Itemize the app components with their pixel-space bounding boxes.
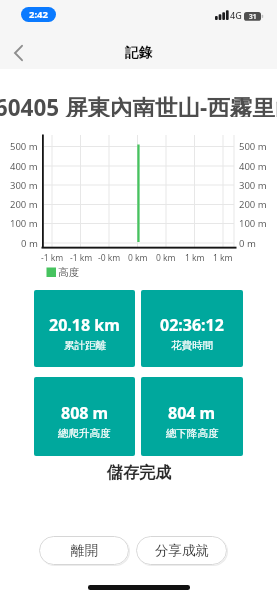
button[interactable]: 808 m xyxy=(34,377,135,456)
staticText: 1 km xyxy=(213,252,233,263)
staticText: 累計距離 xyxy=(64,339,106,352)
button[interactable]: 20.18 km xyxy=(34,290,135,367)
staticText: 高度 xyxy=(58,266,79,279)
staticText: 400 m xyxy=(239,160,267,173)
staticText: 02:36:12 xyxy=(160,314,224,336)
staticText: -1 km xyxy=(41,252,64,263)
button[interactable]: 離開 xyxy=(39,536,129,565)
staticText: 804 m xyxy=(168,402,216,424)
staticText: 分享成就 xyxy=(155,542,209,559)
staticText: 808 m xyxy=(61,402,109,424)
staticText: -1 km xyxy=(70,252,93,263)
button[interactable]: 804 m xyxy=(141,377,243,456)
staticText: 4G xyxy=(230,9,242,21)
staticText: 儲存完成 xyxy=(107,463,171,483)
staticText: 31 xyxy=(249,12,257,21)
staticText: 100 m xyxy=(10,217,38,230)
staticText: 500 m xyxy=(10,140,38,153)
staticText: 花費時間 xyxy=(171,339,213,352)
staticText: 400 m xyxy=(10,160,38,173)
staticText: 總爬升高度 xyxy=(58,427,111,440)
button[interactable]: 分享成就 xyxy=(136,536,227,565)
staticText: 記錄 xyxy=(125,44,152,61)
staticText: 300 m xyxy=(239,179,267,192)
staticText: 200 m xyxy=(239,198,267,211)
staticText: 總下降高度 xyxy=(166,427,219,440)
staticText: 0 km xyxy=(128,252,148,263)
staticText: 0 m xyxy=(239,237,256,250)
button[interactable]: 02:36:12 xyxy=(141,290,243,367)
staticText: 0 m xyxy=(21,237,38,250)
staticText: 100 m xyxy=(239,217,267,230)
staticText: 2:42 xyxy=(29,8,48,21)
staticText: 20.18 km xyxy=(49,314,120,336)
staticText: 1 km xyxy=(185,252,205,263)
button[interactable] xyxy=(14,45,23,61)
staticText: 500 m xyxy=(239,140,267,153)
staticText: 離開 xyxy=(71,542,98,559)
staticText: 300 m xyxy=(10,179,38,192)
staticText: 160405 屏東內南世山-西霧里山 xyxy=(0,92,277,117)
staticText: -0 km xyxy=(98,252,121,263)
staticText: 200 m xyxy=(10,198,38,211)
staticText: 0 km xyxy=(156,252,176,263)
